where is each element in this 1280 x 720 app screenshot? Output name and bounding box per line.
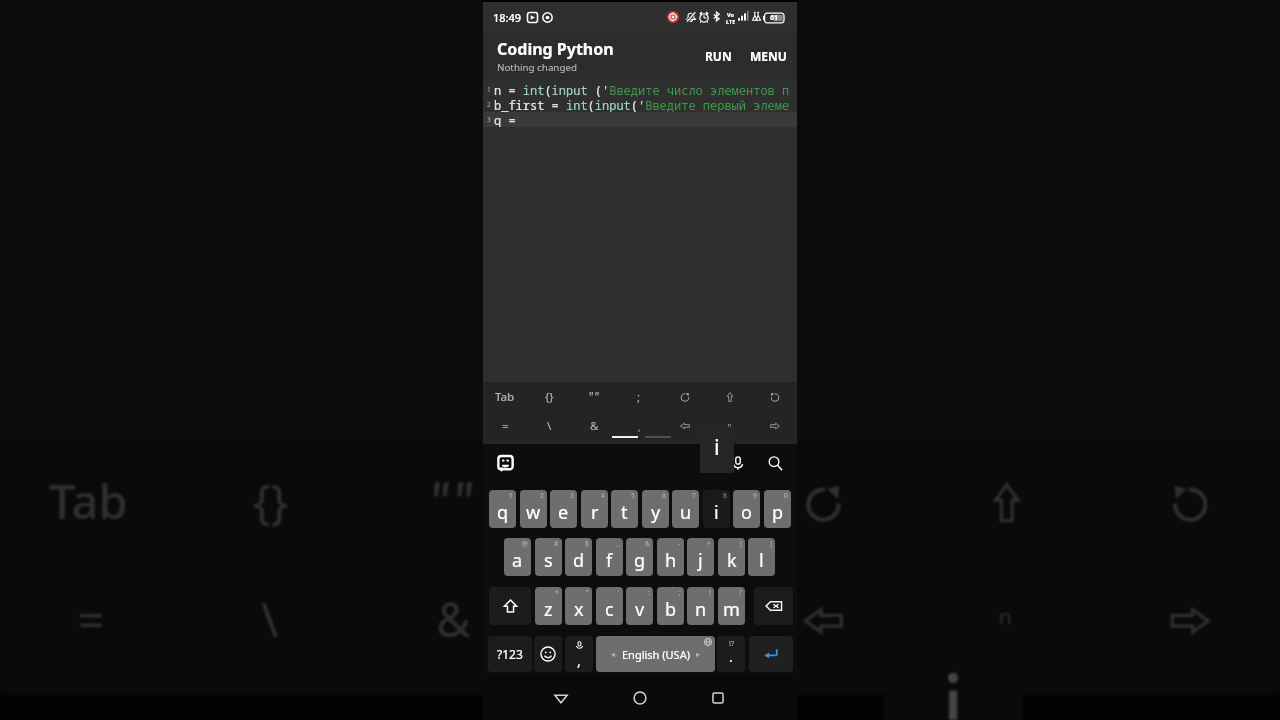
button[interactable]: 1 — [489, 490, 516, 528]
button[interactable]: 8 — [703, 490, 730, 528]
staticText: _ — [617, 539, 620, 548]
staticText: s — [544, 548, 553, 573]
staticText: p — [772, 500, 784, 525]
button[interactable]: RUN — [695, 40, 742, 72]
button[interactable] — [714, 385, 746, 409]
button[interactable]: " — [565, 587, 592, 625]
button[interactable]: 6 — [642, 490, 669, 528]
staticText: ? — [739, 588, 742, 597]
button[interactable]: , — [565, 636, 593, 672]
button[interactable] — [942, 454, 1072, 551]
button[interactable]: {} — [533, 385, 565, 409]
button[interactable]: : — [626, 587, 653, 625]
button[interactable]: \ — [204, 572, 334, 670]
button[interactable]: - — [657, 538, 684, 576]
button[interactable]: Tab — [489, 385, 521, 409]
button[interactable]: 0 — [764, 490, 791, 528]
button[interactable]: + — [687, 538, 714, 576]
button[interactable]: * — [535, 587, 562, 625]
staticText: t — [621, 500, 628, 525]
button[interactable]: & — [626, 538, 653, 576]
button[interactable] — [759, 414, 791, 438]
staticText: 3 — [570, 491, 574, 500]
staticText: RUN — [705, 48, 732, 64]
button[interactable] — [758, 572, 889, 670]
button[interactable]: 9 — [733, 490, 760, 528]
button[interactable] — [1125, 454, 1255, 551]
button[interactable]: Shift — [489, 587, 531, 625]
staticText: ( — [740, 539, 742, 548]
button[interactable] — [669, 414, 701, 438]
button[interactable]: ? — [718, 587, 745, 625]
button[interactable]: 7 — [672, 490, 699, 528]
button[interactable]: $ — [565, 538, 592, 576]
staticText: ?123 — [497, 646, 523, 662]
button[interactable]: Stickers — [492, 450, 518, 476]
button[interactable]: ' — [596, 587, 623, 625]
staticText: * — [555, 588, 559, 597]
button[interactable]: , — [623, 415, 655, 439]
button[interactable] — [387, 454, 518, 551]
button[interactable]: 5 — [611, 490, 638, 528]
staticText: 61 — [770, 13, 779, 23]
button[interactable] — [758, 454, 889, 551]
staticText: , — [638, 421, 641, 433]
staticText: Tab — [49, 470, 130, 535]
button[interactable]: ; — [571, 454, 701, 551]
button[interactable]: ) — [748, 538, 775, 576]
staticText: , — [632, 600, 644, 649]
staticText: = — [77, 588, 106, 653]
button[interactable]: = — [489, 414, 521, 438]
staticText: e — [558, 500, 569, 525]
button[interactable]: # — [535, 538, 562, 576]
staticText: 8 — [723, 491, 727, 500]
button[interactable]: Tab — [24, 454, 155, 551]
button[interactable]: ! — [687, 587, 714, 625]
button[interactable]: Home — [626, 684, 654, 712]
staticText: 1 — [487, 85, 491, 94]
button[interactable]: ◂ — [596, 636, 715, 672]
staticText: m — [723, 597, 740, 622]
button[interactable] — [759, 385, 791, 409]
staticText: w — [526, 500, 541, 525]
button[interactable]: ⁿ — [714, 413, 746, 437]
staticText: 6 — [662, 491, 666, 500]
button[interactable]: Enter — [749, 636, 793, 672]
staticText: - — [678, 539, 681, 548]
button[interactable]: Backspace — [754, 587, 793, 625]
staticText: n — [695, 597, 707, 622]
button[interactable]: Emoji — [534, 636, 562, 672]
button[interactable]: Back — [547, 684, 575, 712]
button[interactable] — [578, 385, 610, 409]
button[interactable]: , — [571, 576, 701, 674]
button[interactable]: Recents — [704, 684, 732, 712]
button[interactable]: Voice input — [725, 450, 751, 476]
button[interactable]: Search — [762, 450, 788, 476]
button[interactable] — [1125, 572, 1255, 670]
staticText: x — [574, 597, 584, 622]
button[interactable]: 4 — [581, 490, 608, 528]
button[interactable]: & — [387, 572, 518, 670]
staticText: Vo — [727, 11, 734, 18]
button[interactable]: 3 — [550, 490, 577, 528]
button[interactable]: @ — [504, 538, 531, 576]
button[interactable]: ; — [657, 587, 684, 625]
staticText: English (USA) — [622, 647, 690, 662]
button[interactable]: _ — [596, 538, 623, 576]
button[interactable]: !? — [717, 636, 745, 672]
staticText: Nothing changed — [497, 61, 578, 74]
button[interactable]: ; — [623, 385, 655, 409]
button[interactable]: 2 — [520, 490, 547, 528]
button[interactable] — [669, 385, 701, 409]
button[interactable]: = — [24, 572, 155, 670]
button[interactable]: MENU — [742, 40, 797, 72]
button[interactable]: & — [578, 414, 610, 438]
button[interactable]: ?123 — [488, 636, 532, 672]
button[interactable]: {} — [204, 454, 334, 551]
button[interactable]: \ — [533, 414, 565, 438]
button[interactable]: ( — [718, 538, 745, 576]
